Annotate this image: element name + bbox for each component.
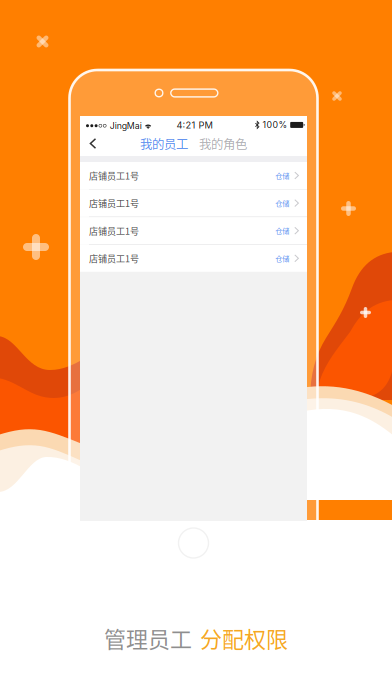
staticText: 仓储 <box>275 170 289 181</box>
button[interactable]: 店铺员工1号 <box>80 245 307 272</box>
staticText: 店铺员工1号 <box>89 224 139 237</box>
staticText: 店铺员工1号 <box>89 169 139 182</box>
staticText: 分配权限 <box>200 622 288 654</box>
button[interactable]: Back <box>80 132 105 155</box>
staticText: 我的角色 <box>199 134 247 152</box>
button[interactable]: 我的员工 <box>140 134 188 152</box>
button[interactable]: 店铺员工1号 <box>80 217 307 244</box>
staticText: 管理员工 <box>104 622 192 654</box>
staticText: 仓储 <box>275 225 289 236</box>
staticText: JingMai <box>110 120 142 131</box>
staticText: 我的员工 <box>140 134 188 152</box>
staticText: 仓储 <box>275 253 289 263</box>
staticText: 店铺员工1号 <box>89 196 139 210</box>
button[interactable]: 我的角色 <box>199 134 247 152</box>
button[interactable]: 店铺员工1号 <box>80 162 307 189</box>
button[interactable]: 店铺员工1号 <box>80 190 307 217</box>
staticText: 店铺员工1号 <box>89 252 139 265</box>
staticText: 4:21 PM <box>176 119 212 131</box>
staticText: 仓储 <box>275 198 289 208</box>
staticText: 100% <box>263 120 288 130</box>
